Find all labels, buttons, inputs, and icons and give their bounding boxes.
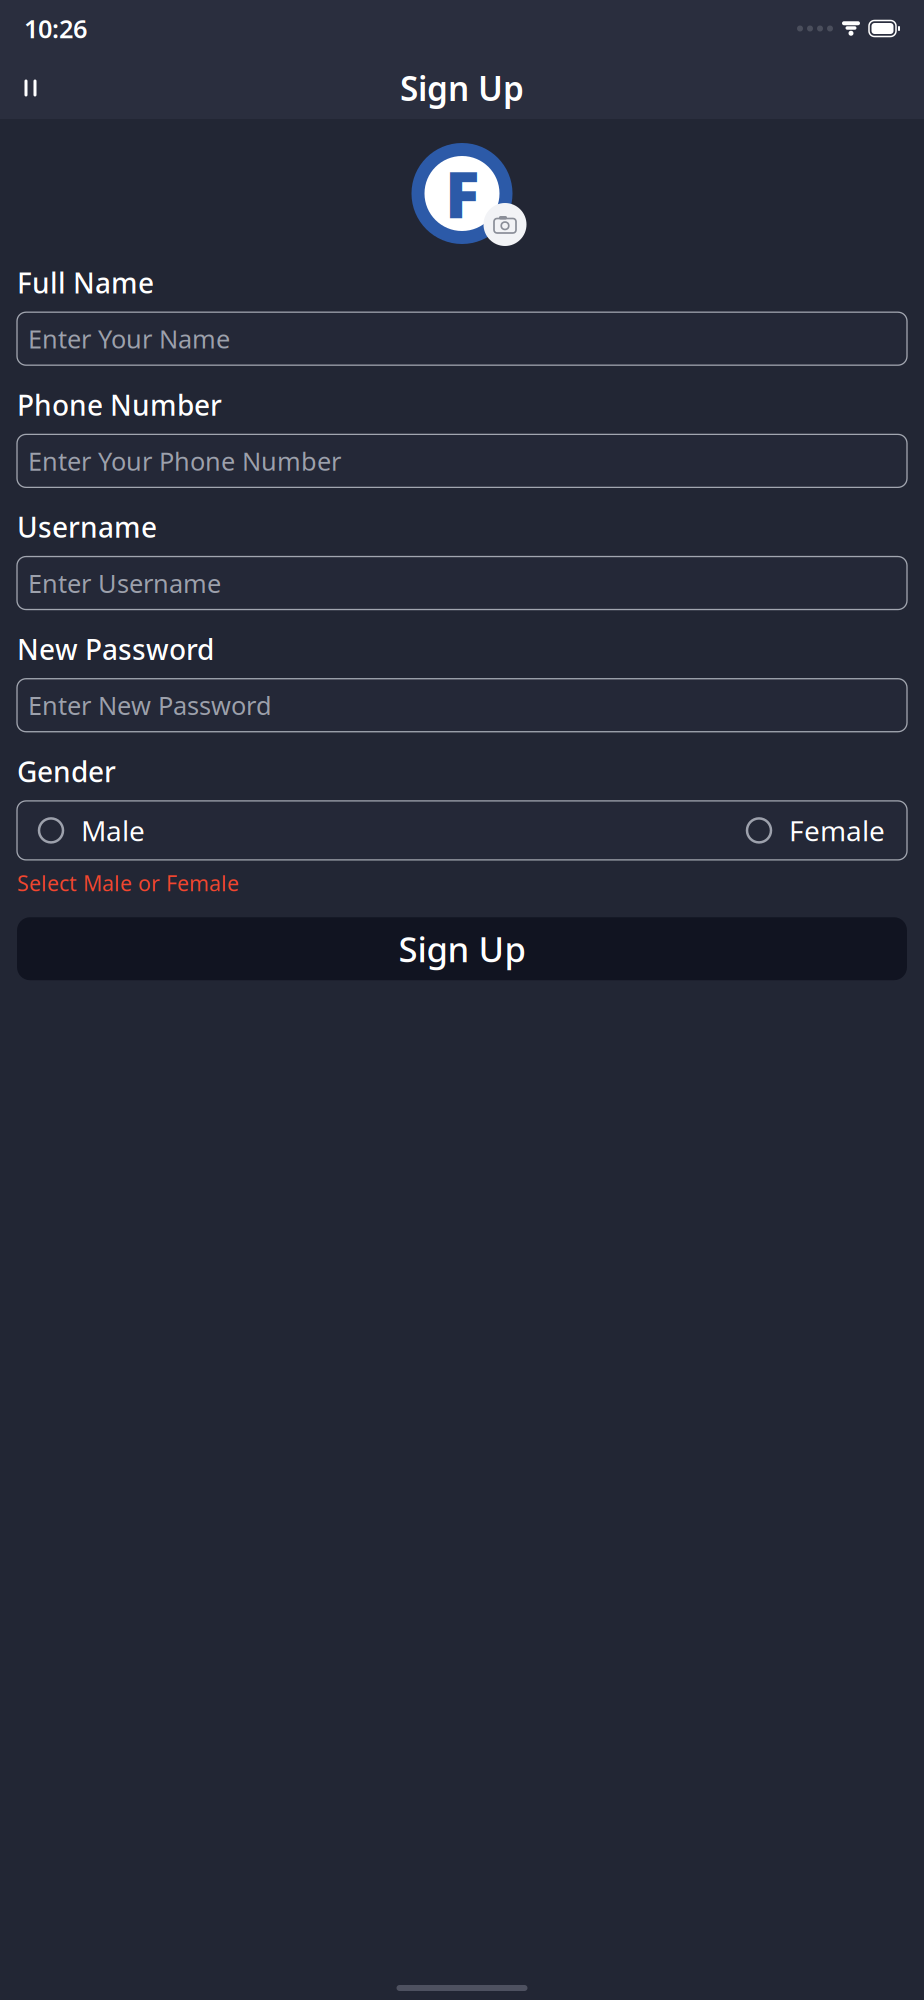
button[interactable]: Female — [747, 812, 885, 849]
staticText: 10:26 — [24, 12, 87, 45]
staticText: Select Male or Female — [17, 869, 239, 897]
button[interactable]: Enter Username — [17, 556, 907, 609]
button[interactable]: Enter Your Name — [17, 312, 907, 365]
button[interactable]: Male — [39, 812, 145, 849]
staticText: Full Name — [17, 264, 154, 301]
staticText: F — [445, 151, 479, 236]
staticText: Gender — [17, 753, 116, 790]
button[interactable]: Sign Up — [17, 917, 907, 980]
button[interactable]: Change profile photo — [397, 143, 527, 244]
staticText: Username — [17, 508, 157, 546]
staticText: Enter Your Phone Number — [28, 444, 341, 478]
button[interactable]: Back — [6, 65, 52, 111]
staticText: Enter Username — [28, 566, 221, 600]
staticText: Sign Up — [398, 926, 525, 972]
staticText: Phone Number — [17, 386, 222, 423]
button[interactable]: Enter New Password — [17, 679, 907, 732]
staticText: Sign Up — [400, 66, 524, 110]
button[interactable]: Enter Your Phone Number — [17, 434, 907, 487]
staticText: New Password — [17, 630, 214, 668]
staticText: Enter New Password — [28, 688, 272, 722]
staticText: Female — [789, 812, 885, 849]
staticText: Male — [81, 812, 145, 849]
staticText: Enter Your Name — [28, 322, 230, 355]
